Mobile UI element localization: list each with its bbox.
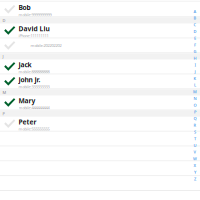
staticText: R bbox=[193, 123, 196, 128]
staticText: mobile:202202202 bbox=[30, 43, 61, 48]
staticText: P bbox=[2, 111, 4, 116]
button[interactable]: Bob bbox=[0, 2, 200, 17]
staticText: H bbox=[193, 56, 196, 61]
button[interactable]: Mary bbox=[0, 96, 200, 110]
staticText: S bbox=[194, 129, 196, 135]
staticText: E bbox=[194, 35, 196, 41]
staticText: O bbox=[193, 102, 196, 108]
button[interactable]: David Liu bbox=[0, 24, 200, 38]
staticText: mobile:888888888 bbox=[18, 69, 49, 74]
staticText: Q bbox=[193, 116, 196, 121]
staticText: C bbox=[193, 22, 196, 27]
staticText: W bbox=[193, 156, 197, 161]
button[interactable]: mobile:202202202 bbox=[0, 38, 200, 53]
staticText: mobile:9999999999 bbox=[18, 12, 51, 17]
button[interactable]: Alphabet index bbox=[191, 8, 198, 182]
staticText: M bbox=[2, 90, 6, 95]
staticText: Mary bbox=[18, 96, 35, 105]
staticText: mobile:555555555 bbox=[18, 126, 49, 132]
staticText: T bbox=[194, 136, 196, 141]
staticText: B bbox=[193, 15, 196, 21]
staticText: J bbox=[2, 54, 3, 59]
button[interactable]: John Jr. bbox=[0, 74, 200, 89]
staticText: U bbox=[193, 143, 196, 148]
staticText: V bbox=[193, 149, 196, 155]
staticText: Peter bbox=[18, 117, 36, 126]
staticText: I bbox=[194, 62, 195, 68]
staticText: J bbox=[194, 69, 195, 74]
staticText: Bob bbox=[18, 3, 30, 12]
staticText: G bbox=[193, 49, 196, 54]
staticText: M bbox=[193, 89, 197, 94]
staticText: Y bbox=[194, 169, 196, 175]
staticText: mobile:333333333 bbox=[18, 84, 49, 89]
staticText: P bbox=[194, 109, 196, 114]
staticText: D bbox=[193, 29, 196, 34]
staticText: D bbox=[2, 18, 5, 23]
staticText: K bbox=[193, 76, 196, 81]
staticText: iPhone:111111111 bbox=[18, 33, 48, 38]
staticText: A bbox=[193, 9, 196, 14]
staticText: John Jr. bbox=[18, 75, 40, 84]
button[interactable]: Jack bbox=[0, 60, 200, 74]
staticText: N bbox=[193, 96, 196, 101]
staticText: Z bbox=[194, 176, 196, 181]
staticText: L bbox=[194, 82, 196, 88]
staticText: David Liu bbox=[18, 24, 49, 33]
staticText: X bbox=[193, 163, 196, 168]
button[interactable]: Peter bbox=[0, 117, 200, 132]
staticText: Jack bbox=[18, 60, 31, 69]
staticText: F bbox=[194, 42, 196, 47]
staticText: mobile:444444444 bbox=[18, 105, 49, 110]
